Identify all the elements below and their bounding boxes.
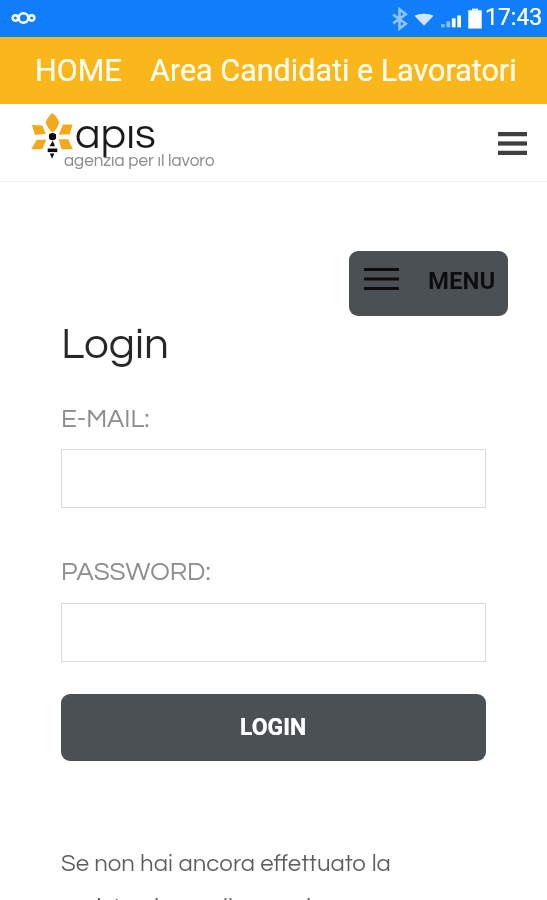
staticText: PASSWORD: [61, 559, 211, 586]
button[interactable]: Open navigation menu [489, 120, 535, 166]
staticText: Login [61, 322, 169, 367]
button[interactable]: HOME [35, 53, 122, 89]
staticText: 17:43 [485, 4, 543, 31]
staticText: Area Candidati e Lavoratori [150, 53, 517, 89]
button[interactable]: Password field [61, 603, 486, 662]
button[interactable]: MENU [349, 251, 508, 316]
staticText: MENU [428, 267, 496, 295]
staticText: LOGIN [240, 714, 307, 741]
button[interactable]: LOGIN [61, 694, 486, 761]
button[interactable]: E-mail field [61, 449, 486, 508]
staticText: Se non hai ancora effettuato la registra… [61, 851, 461, 900]
button[interactable]: apis agenzia per il lavoro [26, 109, 218, 171]
staticText: agenzıa per ıl lavoro [64, 152, 215, 170]
staticText: E-MAIL: [61, 406, 150, 433]
staticText: HOME [35, 53, 122, 89]
staticText: apıs [75, 113, 156, 157]
